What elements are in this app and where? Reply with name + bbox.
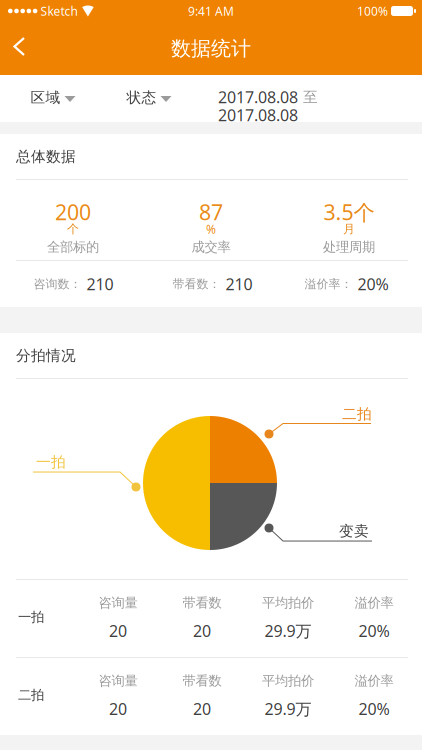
staticText: 20	[109, 620, 127, 641]
staticText: 个	[67, 222, 79, 236]
staticText: 处理周期	[323, 239, 375, 255]
staticText: 平均拍价	[262, 595, 314, 611]
staticText: 二拍	[18, 687, 44, 703]
button[interactable]: 区域	[30, 88, 75, 106]
staticText: 29.9万	[264, 698, 311, 719]
staticText: 100%	[357, 3, 388, 19]
staticText: 咨询数：	[33, 277, 81, 291]
button[interactable]: 2017.08.08	[218, 86, 328, 126]
staticText: 全部标的	[47, 239, 99, 255]
staticText: 20%	[358, 620, 389, 641]
staticText: 二拍	[342, 405, 372, 423]
button[interactable]: 状态	[126, 88, 171, 106]
staticText: 状态	[126, 88, 156, 106]
staticText: 带看数：	[172, 277, 220, 291]
staticText: 3.5个	[323, 198, 374, 226]
staticText: 29.9万	[264, 620, 311, 641]
staticText: 210	[225, 273, 252, 295]
staticText: 9:41 AM	[188, 3, 234, 19]
staticText: 20	[193, 698, 211, 719]
staticText: 20	[109, 698, 127, 719]
staticText: 2017.08.08	[218, 104, 298, 126]
staticText: 变卖	[339, 522, 369, 540]
staticText: 一拍	[36, 453, 66, 471]
staticText: 带看数	[182, 673, 221, 689]
staticText: Sketch	[40, 3, 77, 19]
staticText: 溢价率	[354, 595, 393, 611]
staticText: 至	[303, 88, 318, 106]
staticText: 分拍情况	[16, 346, 76, 364]
staticText: 成交率	[191, 239, 230, 255]
staticText: 2017.08.08	[218, 86, 298, 108]
staticText: 一拍	[18, 609, 44, 625]
staticText: 溢价率	[354, 673, 393, 689]
staticText: 溢价率：	[304, 277, 352, 291]
staticText: 20%	[358, 698, 389, 719]
staticText: 210	[86, 273, 113, 295]
button[interactable]: Back	[8, 34, 38, 59]
staticText: 87	[199, 198, 223, 226]
staticText: 20%	[357, 273, 388, 295]
staticText: 200	[55, 198, 91, 226]
staticText: 咨询量	[98, 673, 137, 689]
staticText: 咨询量	[98, 595, 137, 611]
staticText: 数据统计	[171, 36, 251, 61]
staticText: 总体数据	[16, 147, 76, 165]
staticText: 20	[193, 620, 211, 641]
staticText: 平均拍价	[262, 673, 314, 689]
staticText: 区域	[30, 88, 60, 106]
staticText: %	[206, 221, 216, 237]
staticText: 月	[343, 222, 355, 236]
staticText: 带看数	[182, 595, 221, 611]
